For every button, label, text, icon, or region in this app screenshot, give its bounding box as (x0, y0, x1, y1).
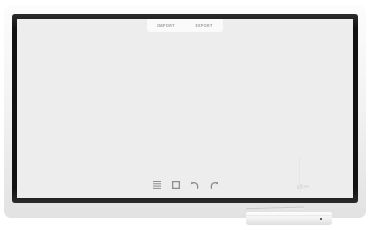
button[interactable]: Menu (150, 178, 163, 191)
button[interactable]: Pen tray (246, 212, 332, 225)
staticText: EXPORT (195, 23, 213, 28)
button[interactable]: Redo (207, 178, 220, 191)
button[interactable]: Shape (169, 178, 182, 191)
staticText: IMPORT (157, 23, 175, 28)
button[interactable]: EXPORT (185, 19, 223, 32)
button[interactable]: Undo (188, 178, 201, 191)
button[interactable]: IMPORT (147, 19, 185, 32)
